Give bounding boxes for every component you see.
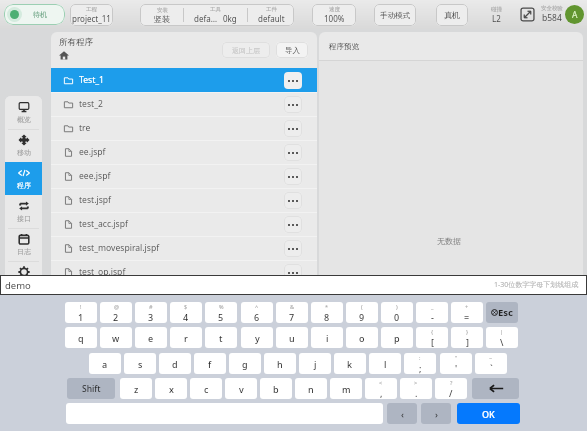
button[interactable]: d — [159, 353, 191, 374]
button[interactable]: More options — [284, 96, 302, 113]
button[interactable]: 设置 — [5, 261, 42, 294]
button[interactable]: Home — [59, 50, 69, 60]
button[interactable]: t — [205, 327, 237, 348]
staticText: OK — [482, 408, 495, 420]
button[interactable]: b — [260, 378, 292, 399]
button[interactable]: 工程 — [70, 4, 113, 26]
button[interactable]: ee.jspf — [51, 140, 317, 164]
button[interactable]: 移动 — [5, 129, 42, 162]
button[interactable]: More options — [284, 144, 302, 161]
staticText: s — [138, 358, 143, 370]
button[interactable]: n — [295, 378, 327, 399]
button[interactable]: More options — [284, 240, 302, 257]
button[interactable]: # — [135, 302, 167, 323]
button[interactable]: & — [276, 302, 308, 323]
button[interactable]: * — [311, 302, 343, 323]
button[interactable]: › — [421, 403, 451, 424]
button[interactable]: 概览 — [5, 96, 42, 129]
button[interactable]: 工具 — [184, 6, 247, 24]
button[interactable]: Shift — [67, 378, 115, 399]
button[interactable]: More options — [284, 72, 302, 89]
button[interactable]: > — [400, 378, 432, 399]
button[interactable]: x — [155, 378, 187, 399]
button[interactable]: 工件 — [248, 6, 294, 24]
button[interactable]: l — [369, 353, 401, 374]
button[interactable]: Fullscreen — [519, 6, 536, 23]
button[interactable]: ‹ — [387, 403, 417, 424]
button[interactable]: More options — [284, 120, 302, 137]
button[interactable]: Esc — [486, 302, 518, 323]
button[interactable]: " — [440, 353, 472, 374]
button[interactable]: k — [334, 353, 366, 374]
button[interactable]: m — [330, 378, 362, 399]
button[interactable]: q — [65, 327, 97, 348]
button[interactable]: More options — [284, 192, 302, 209]
button[interactable]: v — [225, 378, 257, 399]
button[interactable]: ~ — [475, 353, 507, 374]
button[interactable]: test_acc.jspf — [51, 212, 317, 236]
button[interactable]: eee.jspf — [51, 164, 317, 188]
button[interactable]: : — [404, 353, 436, 374]
button[interactable]: 程序 — [5, 162, 42, 195]
button[interactable]: % — [205, 302, 237, 323]
button[interactable]: A — [565, 5, 584, 24]
staticText: { — [431, 328, 434, 335]
button[interactable]: $ — [170, 302, 202, 323]
staticText: 待机 — [33, 10, 47, 19]
staticText: l — [384, 358, 387, 370]
staticText: 安装 — [157, 7, 168, 14]
button[interactable]: g — [229, 353, 261, 374]
button[interactable]: test.jspf — [51, 188, 317, 212]
button[interactable]: < — [365, 378, 397, 399]
button[interactable]: { — [416, 327, 448, 348]
button[interactable]: 手动模式 — [374, 4, 416, 26]
button[interactable]: c — [190, 378, 222, 399]
button[interactable]: r — [170, 327, 202, 348]
staticText: 7 — [289, 311, 295, 323]
button[interactable]: f — [194, 353, 226, 374]
button[interactable]: j — [299, 353, 331, 374]
button[interactable]: More options — [284, 216, 302, 233]
button[interactable]: ! — [65, 302, 97, 323]
button[interactable]: y — [241, 327, 273, 348]
button[interactable]: 日志 — [5, 228, 42, 261]
button[interactable]: i — [311, 327, 343, 348]
button[interactable]: 接口 — [5, 195, 42, 228]
button[interactable]: More options — [284, 168, 302, 185]
button[interactable]: 真机 — [436, 4, 468, 26]
button[interactable]: s — [124, 353, 156, 374]
staticText: 概览 — [17, 115, 31, 124]
button[interactable]: u — [276, 327, 308, 348]
button[interactable]: ) — [381, 302, 413, 323]
button[interactable]: z — [120, 378, 152, 399]
button[interactable]: test_op.jspf — [51, 260, 317, 284]
button[interactable]: Test_1 — [51, 68, 317, 92]
button[interactable]: ^ — [241, 302, 273, 323]
button[interactable]: Backspace — [472, 378, 519, 399]
staticText: + — [465, 303, 469, 310]
button[interactable]: w — [100, 327, 132, 348]
button[interactable]: ( — [346, 302, 378, 323]
button[interactable]: test_2 — [51, 92, 317, 116]
button[interactable]: ? — [435, 378, 467, 399]
button[interactable]: 返回上层 — [222, 42, 270, 58]
button[interactable]: + — [451, 302, 483, 323]
button[interactable]: h — [264, 353, 296, 374]
button[interactable]: a — [89, 353, 121, 374]
button[interactable]: 导入 — [276, 42, 308, 58]
button[interactable]: More options — [284, 264, 302, 281]
button[interactable]: 速度 — [312, 4, 356, 26]
button[interactable]: tre — [51, 116, 317, 140]
button[interactable]: test_movespiral.jspf — [51, 236, 317, 260]
button[interactable]: | — [486, 327, 518, 348]
button[interactable]: } — [451, 327, 483, 348]
button[interactable]: e — [135, 327, 167, 348]
button[interactable]: @ — [100, 302, 132, 323]
button[interactable]: o — [346, 327, 378, 348]
button[interactable]: _ — [416, 302, 448, 323]
button[interactable]: 安装 — [140, 7, 183, 24]
button[interactable]: OK — [457, 403, 520, 424]
button[interactable]: p — [381, 327, 413, 348]
button[interactable]: 待机 — [4, 4, 65, 25]
